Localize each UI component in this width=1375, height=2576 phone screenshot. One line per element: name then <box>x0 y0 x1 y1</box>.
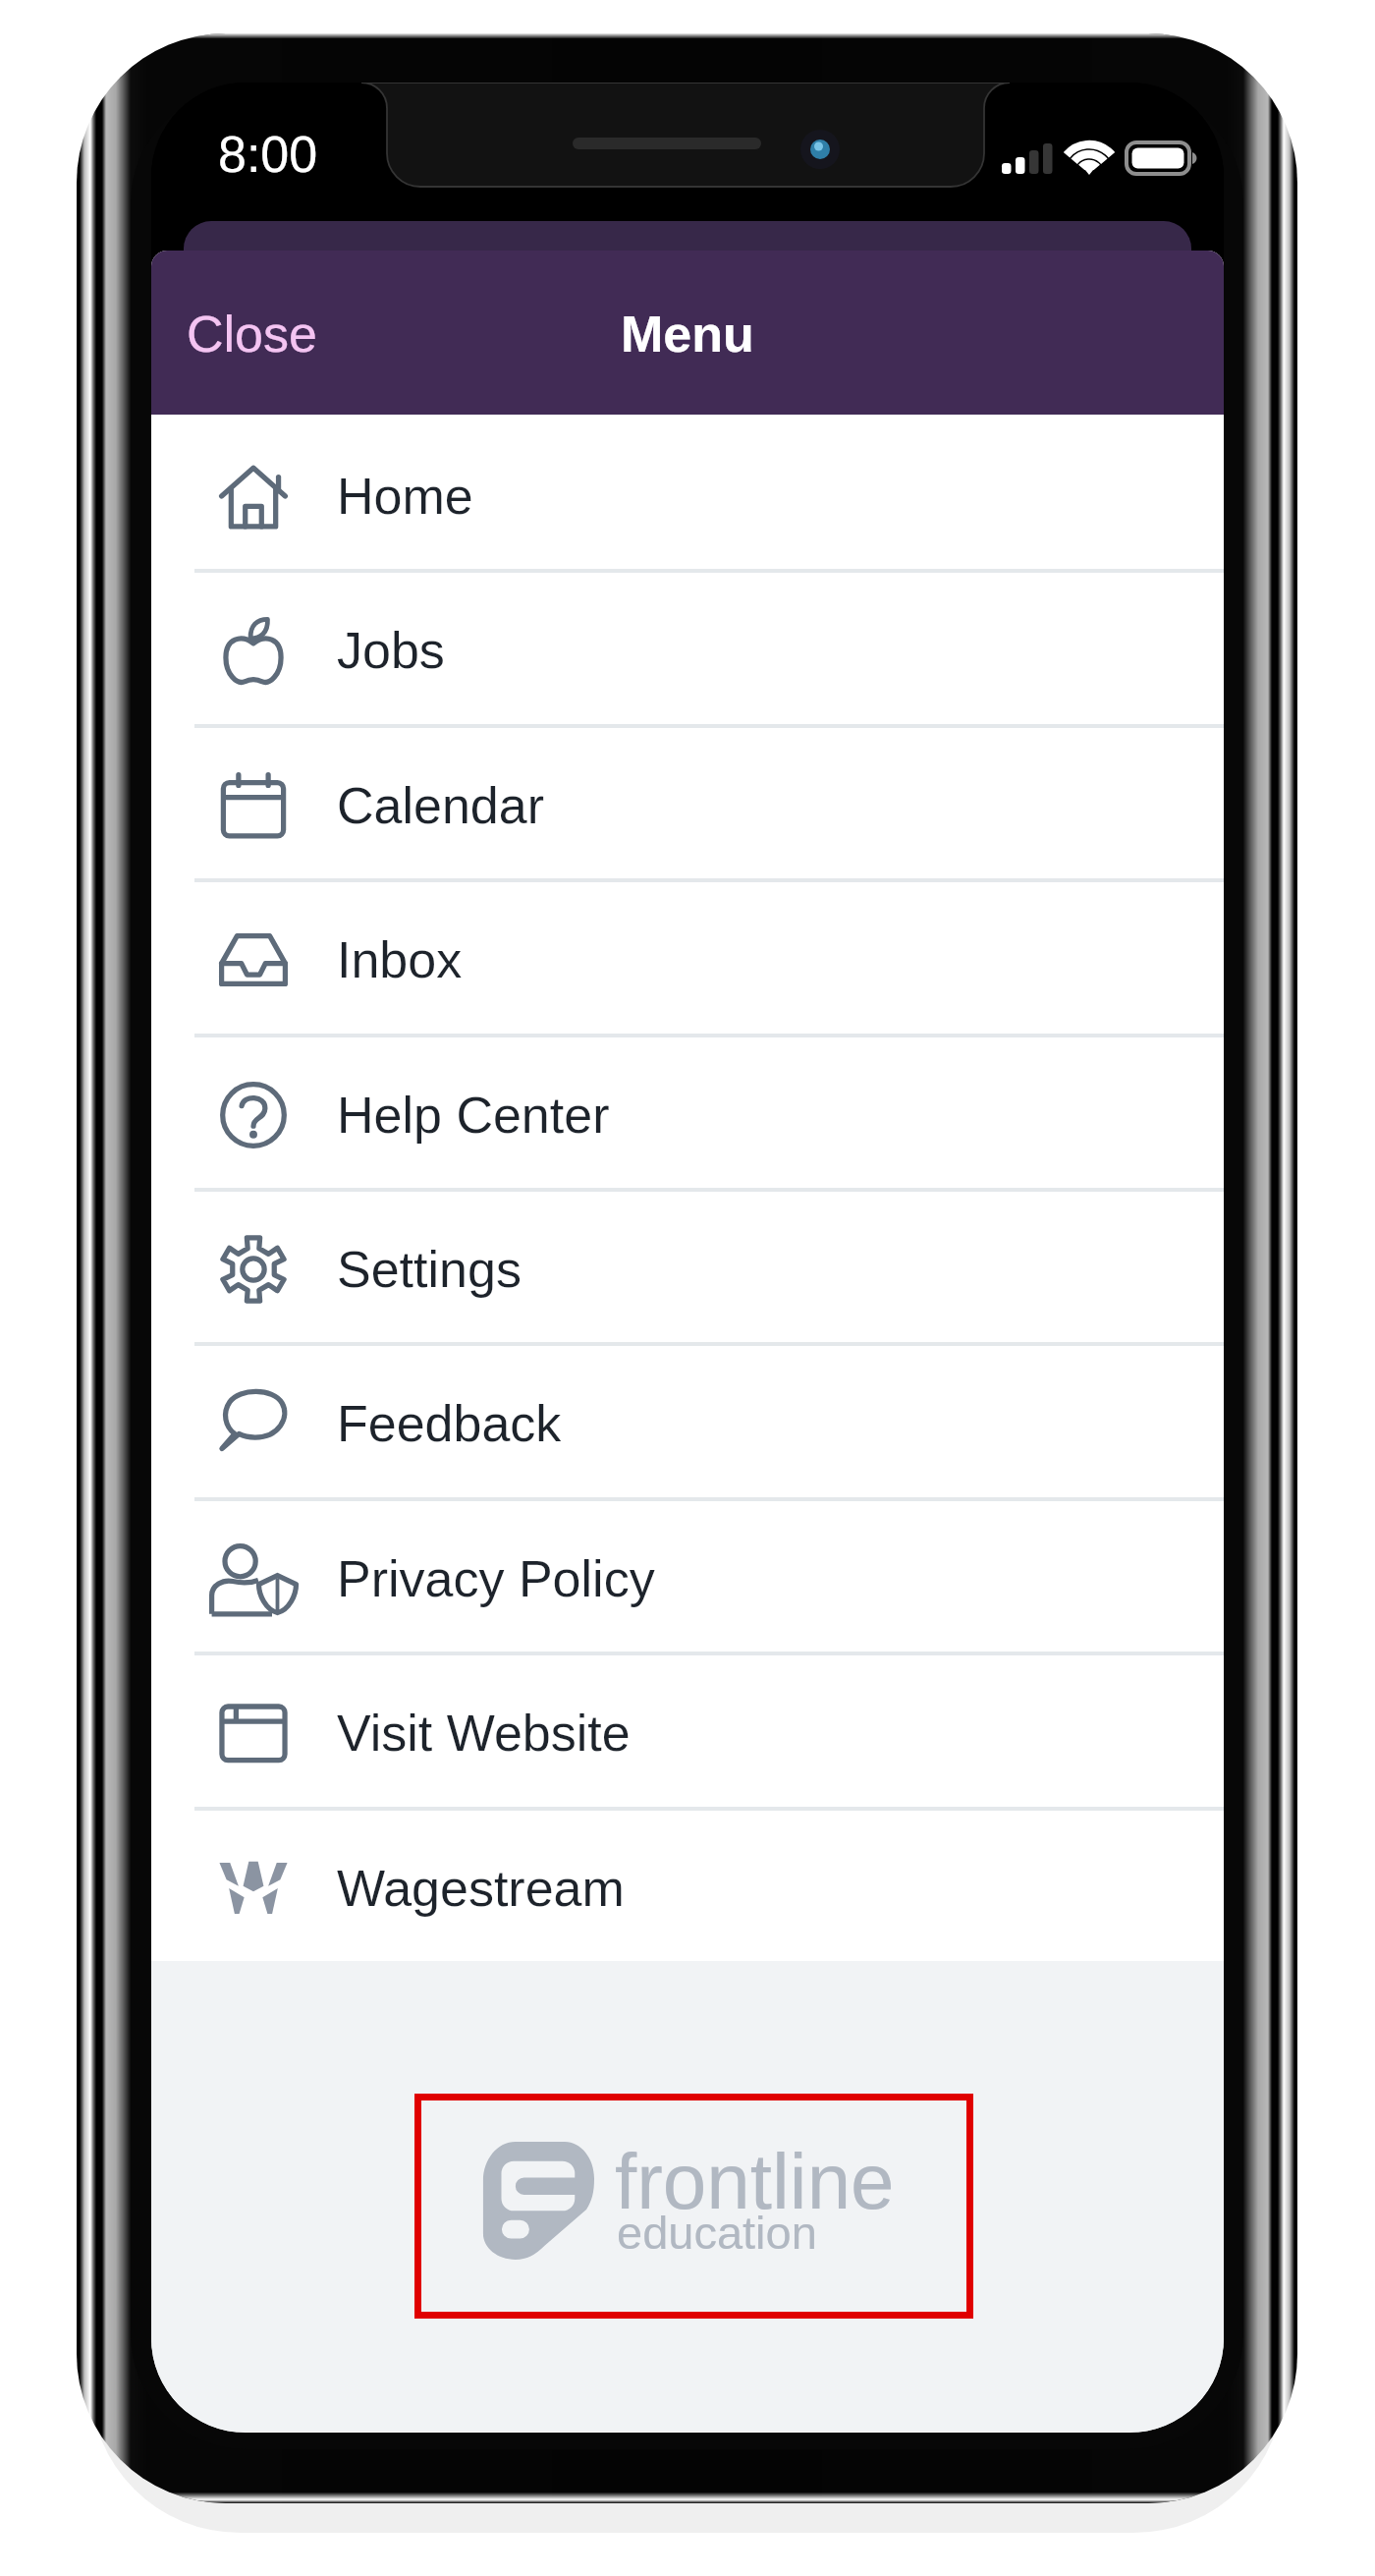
staticText: Jobs <box>337 622 445 679</box>
staticText: frontline <box>615 2138 895 2225</box>
button[interactable]: Frontline Education <box>414 2094 973 2319</box>
button[interactable]: Calendar <box>151 724 1224 878</box>
button[interactable]: Feedback <box>151 1342 1224 1497</box>
button[interactable]: Jobs <box>151 569 1224 724</box>
staticText: Help Center <box>337 1087 610 1144</box>
staticText: Wagestream <box>337 1860 625 1917</box>
button[interactable]: Close <box>151 284 353 384</box>
staticText: Privacy Policy <box>337 1550 655 1607</box>
button[interactable]: Settings <box>151 1188 1224 1342</box>
staticText: education <box>617 2207 817 2259</box>
button[interactable]: Help Center <box>151 1034 1224 1188</box>
button[interactable]: Privacy Policy <box>151 1497 1224 1652</box>
staticText: Settings <box>337 1241 522 1298</box>
button[interactable]: Visit Website <box>151 1652 1224 1807</box>
button[interactable]: Inbox <box>151 878 1224 1034</box>
staticText: Calendar <box>337 777 545 834</box>
staticText: Inbox <box>337 931 463 988</box>
button[interactable]: Home <box>151 415 1224 569</box>
button[interactable]: Wagestream <box>151 1807 1224 1961</box>
staticText: Close <box>187 306 317 363</box>
staticText: Home <box>337 468 473 525</box>
staticText: Menu <box>621 306 754 363</box>
staticText: 8:00 <box>218 126 318 183</box>
staticText: Feedback <box>337 1395 562 1452</box>
staticText: Visit Website <box>337 1705 631 1762</box>
